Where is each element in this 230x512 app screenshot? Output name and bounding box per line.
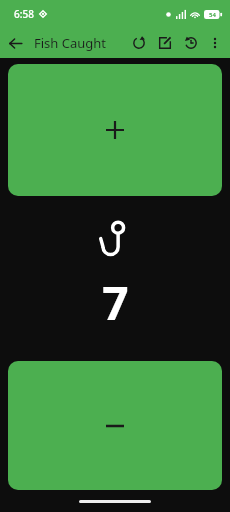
staticText: 6:58 — [14, 7, 34, 21]
staticText: 7 — [102, 271, 129, 334]
button[interactable]: Increment — [8, 64, 222, 196]
staticText: Fish Caught — [34, 34, 107, 52]
button[interactable]: More options — [204, 32, 226, 54]
button[interactable]: Edit — [152, 30, 178, 56]
button[interactable]: Decrement — [8, 361, 222, 490]
button[interactable]: History — [178, 30, 204, 56]
staticText: 54 — [209, 11, 216, 19]
button[interactable]: Back — [0, 28, 30, 58]
button[interactable]: Refresh — [126, 30, 152, 56]
